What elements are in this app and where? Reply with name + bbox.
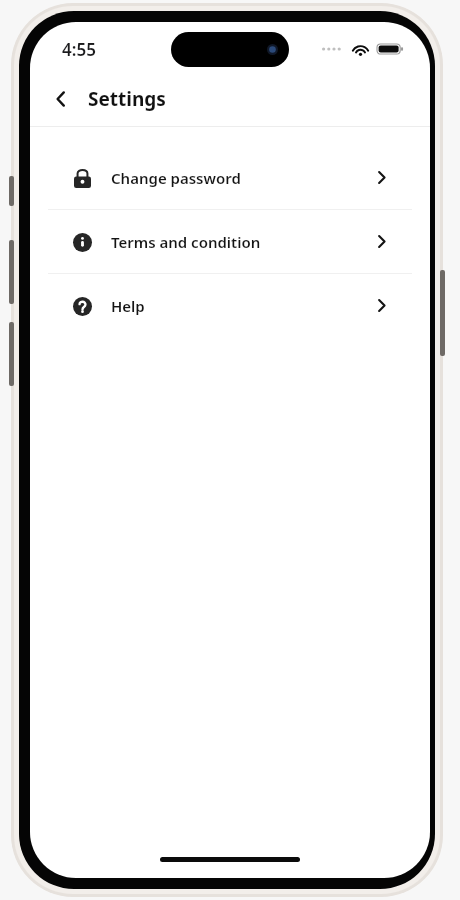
button[interactable]: Back [40, 78, 82, 120]
staticText: Terms and condition [111, 232, 261, 252]
button[interactable]: Terms and condition [48, 210, 412, 273]
staticText: 4:55 [62, 38, 96, 61]
staticText: Help [111, 296, 145, 316]
staticText: Change password [111, 168, 241, 188]
staticText: Settings [88, 86, 166, 112]
button[interactable]: Help [48, 274, 412, 337]
button[interactable]: Change password [48, 146, 412, 209]
